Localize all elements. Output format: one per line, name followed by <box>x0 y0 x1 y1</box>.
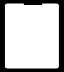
button[interactable]: Menu <box>3 5 10 12</box>
button[interactable] <box>3 39 61 48</box>
button[interactable]: Explore <box>17 61 31 69</box>
button[interactable]: Profile <box>46 61 61 69</box>
button[interactable] <box>3 12 61 21</box>
button[interactable] <box>3 21 61 30</box>
button[interactable]: More options <box>54 5 61 12</box>
button[interactable]: Home <box>3 61 17 69</box>
button[interactable]: Library <box>31 61 46 69</box>
button[interactable] <box>3 48 61 57</box>
button[interactable] <box>3 30 61 39</box>
